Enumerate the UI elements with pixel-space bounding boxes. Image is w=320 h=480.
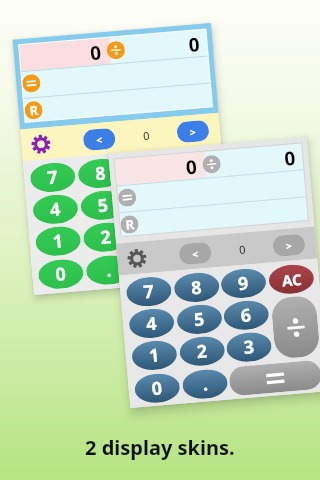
staticText: R xyxy=(29,101,39,120)
staticText: 5 xyxy=(193,306,206,332)
staticText: > xyxy=(285,239,293,253)
button[interactable]: 8 xyxy=(173,271,220,304)
button[interactable]: 8 xyxy=(77,157,124,190)
button[interactable]: AC xyxy=(172,149,219,182)
staticText: 8 xyxy=(190,274,203,300)
button[interactable]: Settings xyxy=(30,133,51,155)
staticText: . xyxy=(201,371,210,397)
staticText: 3 xyxy=(242,334,256,360)
staticText: 5 xyxy=(97,192,110,218)
button[interactable]: Next xyxy=(272,233,306,257)
staticText: 9 xyxy=(141,156,154,182)
button[interactable]: 7 xyxy=(29,161,76,194)
button[interactable]: 3 xyxy=(225,331,273,364)
button[interactable]: Divide xyxy=(106,40,125,60)
staticText: 1 xyxy=(52,228,65,254)
staticText: AC xyxy=(281,269,303,291)
button[interactable]: Divide xyxy=(270,295,320,359)
button[interactable]: 1 xyxy=(131,339,178,372)
button[interactable]: 4 xyxy=(32,193,79,226)
button[interactable]: Settings xyxy=(126,247,147,269)
button[interactable]: . xyxy=(85,254,132,286)
staticText: 0 xyxy=(188,31,201,58)
button[interactable]: 9 xyxy=(124,153,171,186)
staticText: 4 xyxy=(49,196,62,222)
staticText: 0 xyxy=(89,39,102,66)
button[interactable]: 5 xyxy=(176,303,223,336)
staticText: 1 xyxy=(148,342,161,368)
button[interactable]: 0 xyxy=(134,372,181,405)
button[interactable]: Divide xyxy=(174,181,224,246)
staticText: 7 xyxy=(46,164,59,190)
staticText: 2 xyxy=(99,224,113,250)
button[interactable]: Equals xyxy=(132,246,226,282)
button[interactable]: Equals xyxy=(228,360,320,396)
staticText: 4 xyxy=(145,310,158,336)
staticText: 6 xyxy=(240,302,253,328)
staticText: 2 display skins. xyxy=(85,434,235,461)
staticText: 8 xyxy=(94,160,107,186)
button[interactable]: 3 xyxy=(129,217,176,250)
staticText: 3 xyxy=(146,220,159,246)
button[interactable]: Divide xyxy=(202,154,221,174)
staticText: 0 xyxy=(142,128,151,143)
staticText: > xyxy=(189,125,197,139)
staticText: R xyxy=(125,215,135,234)
staticText: 0 xyxy=(151,375,164,401)
staticText: 0 xyxy=(238,242,247,257)
button[interactable]: 0 xyxy=(37,258,85,290)
staticText: < xyxy=(192,247,199,261)
button[interactable]: 9 xyxy=(220,267,267,300)
staticText: . xyxy=(105,257,113,283)
button[interactable]: Next xyxy=(176,120,210,143)
button[interactable]: 2 xyxy=(179,335,226,368)
button[interactable]: 4 xyxy=(128,307,175,340)
button[interactable]: Equals xyxy=(117,188,137,207)
staticText: < xyxy=(96,133,103,147)
button[interactable]: 1 xyxy=(34,225,82,257)
button[interactable]: Previous xyxy=(82,128,116,151)
button[interactable]: 6 xyxy=(126,185,174,218)
button[interactable]: AC xyxy=(268,263,315,296)
button[interactable]: 7 xyxy=(125,275,172,308)
staticText: 0 xyxy=(54,261,67,287)
staticText: 0 xyxy=(185,153,198,180)
button[interactable]: Memory recall xyxy=(24,100,43,120)
staticText: 7 xyxy=(142,279,155,304)
button[interactable]: 5 xyxy=(80,189,127,222)
button[interactable]: . xyxy=(181,368,229,400)
staticText: 6 xyxy=(144,188,157,214)
button[interactable]: Memory recall xyxy=(120,215,139,234)
staticText: 0 xyxy=(283,145,296,172)
staticText: AC xyxy=(185,155,207,177)
button[interactable]: Equals xyxy=(22,74,41,93)
staticText: 2 xyxy=(196,338,209,364)
staticText: 9 xyxy=(237,270,250,296)
button[interactable]: Previous xyxy=(178,242,212,265)
button[interactable]: 6 xyxy=(223,299,270,332)
button[interactable]: 2 xyxy=(82,221,130,253)
